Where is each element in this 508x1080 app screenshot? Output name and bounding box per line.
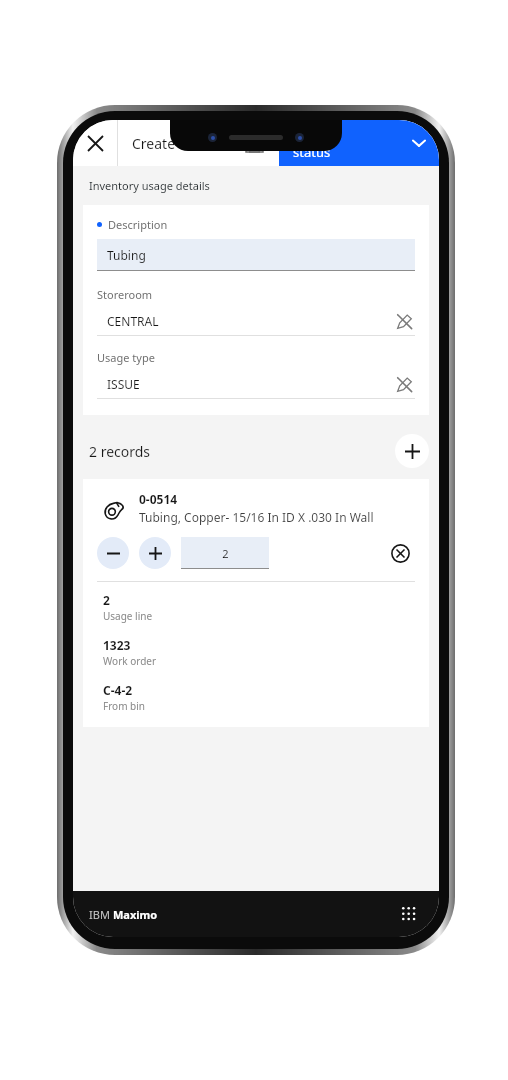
staticText: 2 <box>222 546 229 561</box>
staticText: 2 records <box>89 442 151 461</box>
button[interactable]: CENTRAL <box>97 307 415 335</box>
button[interactable]: App switcher <box>395 900 423 928</box>
button[interactable]: 2 <box>181 537 269 569</box>
button[interactable]: Add record <box>395 434 429 468</box>
staticText: Tubing <box>107 247 146 263</box>
staticText: 1323 <box>103 637 131 653</box>
staticText: IBM <box>89 907 113 922</box>
button[interactable]: Tubing <box>97 239 415 271</box>
staticText: From bin <box>103 699 146 713</box>
other: Read only <box>393 310 415 332</box>
staticText: Tubing, Copper- 15/16 In ID X .030 In Wa… <box>139 509 374 525</box>
button[interactable]: Remove record <box>385 538 415 568</box>
staticText: 2 <box>103 592 110 608</box>
button[interactable]: Change status <box>279 120 439 166</box>
staticText: C-4-2 <box>103 682 133 698</box>
button[interactable]: Close <box>73 120 117 166</box>
staticText: Change status <box>293 127 411 160</box>
button[interactable]: Save <box>239 128 269 158</box>
staticText: Usage line <box>103 609 153 623</box>
staticText: 0-0514 <box>139 491 178 507</box>
button[interactable]: Increase quantity <box>139 537 171 569</box>
staticText: Maximo <box>113 907 158 922</box>
staticText: Inventory usage details <box>89 178 210 193</box>
other: Read only <box>393 373 415 395</box>
staticText: Description <box>108 217 168 232</box>
staticText: Usage type <box>97 350 155 365</box>
staticText: Work order <box>103 654 157 668</box>
button[interactable]: Decrease quantity <box>97 537 129 569</box>
button[interactable]: ISSUE <box>97 370 415 398</box>
staticText: Create ... <box>132 134 190 153</box>
staticText: CENTRAL <box>107 313 159 329</box>
staticText: ISSUE <box>107 376 140 392</box>
staticText: Storeroom <box>97 287 153 302</box>
